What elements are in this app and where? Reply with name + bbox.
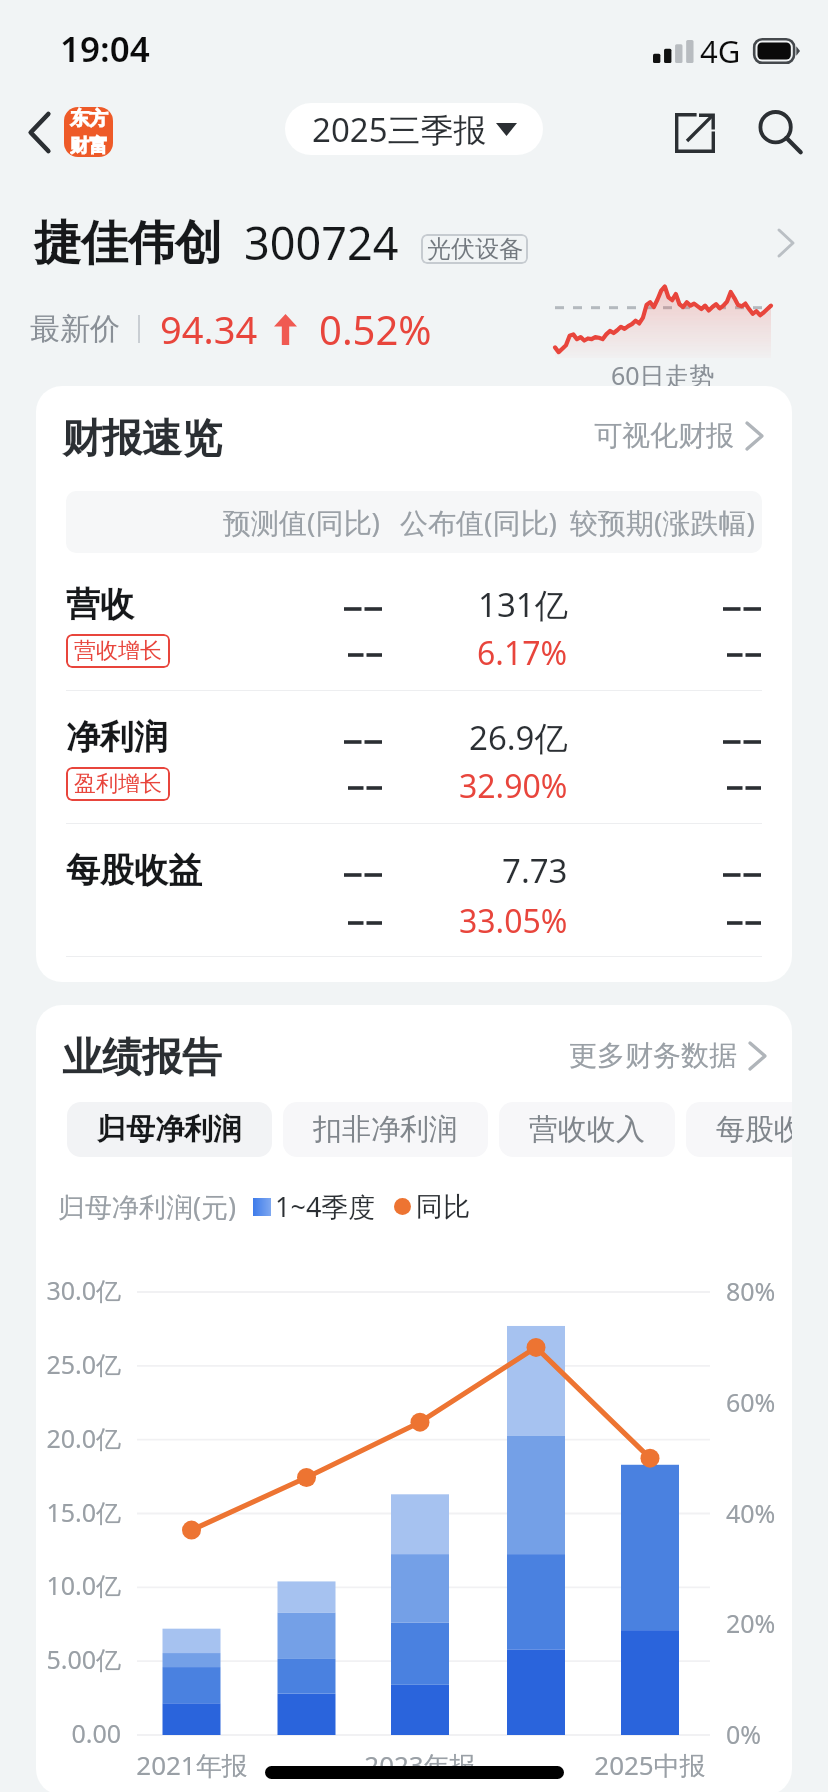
button[interactable]: 营收 [66,581,762,671]
staticText: 25.0亿 [36,1347,121,1381]
staticText: 60% [726,1385,776,1419]
staticText: 可视化财报 [594,418,734,453]
staticText: 东方 [70,107,108,131]
button[interactable]: Search [751,103,809,161]
button[interactable]: Share [666,104,724,162]
staticText: 营收收入 [529,1111,645,1148]
staticText: 扣非净利润 [313,1111,458,1148]
staticText: 光伏设备 [427,234,523,264]
staticText: 33.05% [459,899,568,939]
staticText: 10.0亿 [36,1568,121,1602]
staticText: 盈利增长 [74,770,162,798]
staticText: 每股收益 [716,1111,792,1148]
staticText: 0.52% [319,302,432,356]
staticText: 40% [726,1496,776,1530]
staticText: 较预期(涨跌幅) [570,503,755,541]
staticText: 预测值(同比) [223,503,380,541]
staticText: 同比 [416,1190,470,1224]
button[interactable]: 每股收益 [66,847,762,939]
button[interactable]: 更多财务数据 [569,1038,765,1073]
staticText: 7.73 [502,848,568,893]
button[interactable]: Back [12,105,66,159]
staticText: 更多财务数据 [569,1038,737,1073]
staticText: 300724 [244,212,399,273]
staticText: 营收增长 [74,637,162,665]
button[interactable]: 归母净利润 [67,1102,272,1157]
staticText: 每股收益 [66,849,202,892]
button[interactable]: East Money [64,107,113,157]
staticText: 营收 [66,583,134,626]
staticText: 19:04 [60,25,150,73]
staticText: 财报速览 [62,413,222,463]
staticText: 2025三季报 [312,107,487,152]
staticText: 5.00亿 [36,1642,121,1676]
staticText: 20.0亿 [36,1421,121,1455]
staticText: 6.17% [477,631,568,671]
staticText: 94.34 [160,303,258,355]
staticText: 归母净利润 [97,1111,242,1148]
button[interactable]: 净利润 [66,714,762,804]
staticText: 2021年报 [112,1747,272,1783]
staticText: 业绩报告 [62,1032,222,1082]
staticText: 26.9亿 [469,715,568,760]
button[interactable]: 捷佳伟创 [0,180,828,380]
staticText: 131亿 [478,582,568,627]
staticText: 60日走势 [611,358,715,392]
staticText: 最新价 [30,310,120,348]
staticText: 1~4季度 [275,1188,376,1225]
staticText: 2025中报 [570,1747,730,1783]
button[interactable]: 营收收入 [499,1102,675,1157]
staticText: 2023年报 [340,1747,500,1783]
staticText: 归母净利润(元) [58,1188,237,1225]
staticText: 0.00 [36,1716,121,1750]
button[interactable]: 每股收益 [686,1102,792,1157]
button[interactable]: 扣非净利润 [283,1102,488,1157]
staticText: 80% [726,1274,776,1308]
staticText: 15.0亿 [36,1495,121,1529]
staticText: 30.0亿 [36,1273,121,1307]
staticText: 4G [700,30,741,72]
staticText: 公布值(同比) [400,503,557,541]
staticText: 捷佳伟创 [34,214,222,273]
staticText: 净利润 [66,716,168,759]
button[interactable]: 可视化财报 [594,418,762,453]
staticText: 0% [726,1717,762,1751]
button[interactable]: 2025三季报 [285,103,543,155]
staticText: 财富 [70,134,108,157]
staticText: 20% [726,1606,776,1640]
staticText: 32.90% [459,764,568,804]
